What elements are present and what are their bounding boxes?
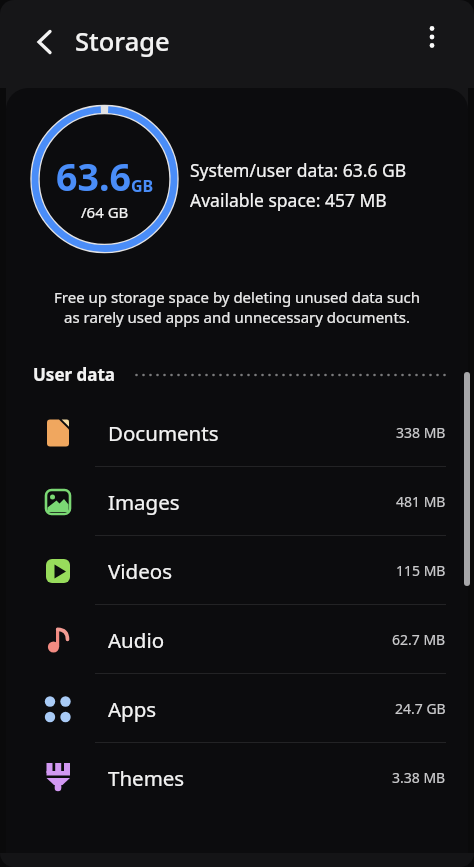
- staticText: Documents: [108, 419, 219, 447]
- button[interactable]: Images: [0, 467, 474, 536]
- staticText: Available space: 457 MB: [190, 188, 387, 212]
- button[interactable]: Apps: [0, 674, 474, 743]
- button[interactable]: Audio: [0, 605, 474, 674]
- staticText: Apps: [108, 695, 157, 723]
- staticText: Videos: [108, 557, 172, 585]
- staticText: 24.7 GB: [395, 699, 446, 718]
- staticText: 115 MB: [396, 561, 446, 580]
- staticText: User data: [33, 363, 116, 386]
- staticText: 481 MB: [396, 492, 446, 511]
- button[interactable]: [413, 18, 451, 56]
- button[interactable]: Videos: [0, 536, 474, 605]
- button[interactable]: Documents: [0, 398, 474, 467]
- staticText: 63.6: [56, 151, 131, 202]
- staticText: Audio: [108, 626, 165, 654]
- staticText: 62.7 MB: [392, 630, 446, 649]
- staticText: Images: [108, 488, 180, 516]
- staticText: /64 GB: [81, 202, 129, 222]
- staticText: Storage: [75, 24, 170, 59]
- staticText: Free up storage space by deleting unused…: [0, 287, 474, 327]
- staticText: GB: [131, 175, 154, 197]
- staticText: 338 MB: [396, 423, 446, 442]
- button[interactable]: [26, 22, 66, 62]
- button[interactable]: Themes: [0, 743, 474, 812]
- staticText: 3.38 MB: [392, 768, 446, 787]
- staticText: Themes: [108, 764, 185, 792]
- staticText: System/user data: 63.6 GB: [190, 158, 407, 182]
